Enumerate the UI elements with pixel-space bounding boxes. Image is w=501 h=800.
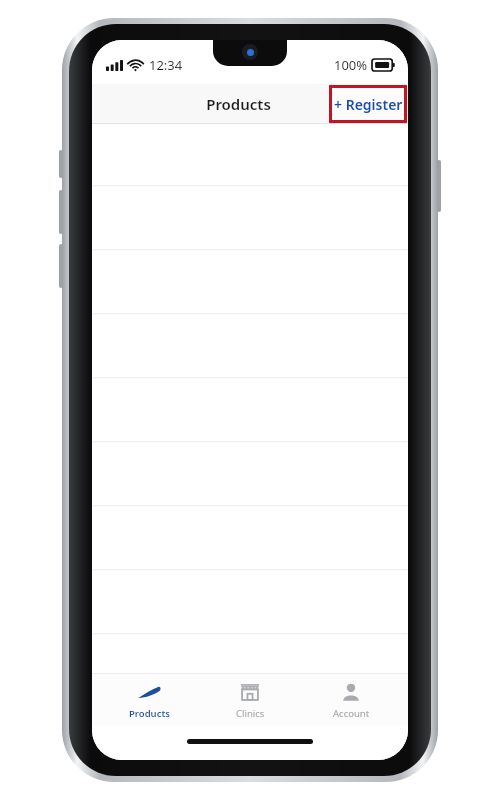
- button[interactable]: Account: [307, 674, 395, 726]
- button[interactable]: + Register: [332, 88, 404, 120]
- staticText: 100%: [334, 56, 368, 74]
- staticText: + Register: [334, 95, 403, 114]
- staticText: Products: [206, 94, 271, 114]
- other: Account: [342, 683, 360, 701]
- other: Products: [137, 684, 161, 700]
- staticText: Products: [129, 707, 170, 720]
- button[interactable]: Products: [105, 674, 193, 726]
- staticText: Account: [333, 707, 370, 720]
- other: Clinics: [241, 683, 259, 701]
- staticText: Clinics: [236, 707, 265, 720]
- button[interactable]: Clinics: [206, 674, 294, 726]
- staticText: 12:34: [149, 56, 183, 74]
